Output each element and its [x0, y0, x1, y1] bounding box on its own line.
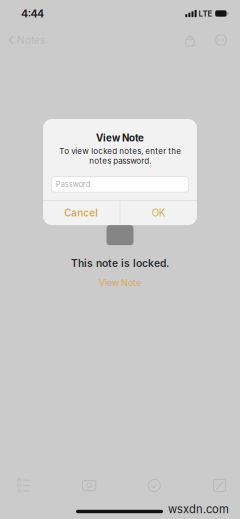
staticText: OK: [152, 207, 166, 219]
staticText: View Note: [99, 278, 141, 288]
staticText: Cancel: [64, 207, 98, 219]
button[interactable]: Camera: [69, 473, 109, 497]
staticText: To view locked notes, enter the notes pa…: [59, 146, 181, 166]
button[interactable]: More: [210, 29, 232, 51]
button[interactable]: Cancel: [43, 201, 120, 225]
staticText: wsxdn.com: [168, 502, 229, 516]
staticText: Notes: [17, 34, 45, 46]
button[interactable]: View Note: [99, 270, 141, 288]
button[interactable]: New note: [199, 473, 239, 497]
staticText: Password: [56, 180, 91, 189]
staticText: This note is locked.: [71, 257, 169, 269]
button[interactable]: Checklist: [4, 473, 44, 497]
staticText: View Note: [96, 132, 144, 144]
button[interactable]: Lock note: [179, 29, 201, 51]
button[interactable]: Notes: [0, 29, 45, 51]
button[interactable]: OK: [120, 201, 197, 225]
staticText: LTE: [199, 9, 213, 18]
button[interactable]: Markup: [134, 473, 174, 497]
staticText: 4:44: [21, 7, 44, 20]
